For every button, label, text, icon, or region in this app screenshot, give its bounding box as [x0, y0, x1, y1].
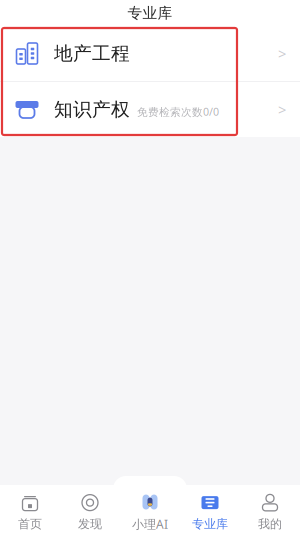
staticText: >	[278, 100, 286, 119]
staticText: 发现	[78, 517, 102, 531]
button[interactable]: 首页	[0, 489, 60, 535]
button[interactable]: 知识产权	[0, 82, 300, 137]
button[interactable]: 发现	[60, 489, 120, 535]
staticText: 知识产权	[54, 98, 130, 121]
button[interactable]: 地产工程	[0, 26, 300, 81]
button[interactable]: 专业库	[180, 489, 240, 535]
staticText: 专业库	[192, 517, 228, 531]
staticText: 小理AI	[132, 516, 168, 532]
staticText: >	[278, 44, 286, 63]
button[interactable]: 我的	[240, 489, 300, 535]
staticText: 免费检索次数0/0	[137, 105, 219, 119]
staticText: 我的	[258, 517, 282, 531]
button[interactable]: 小理AI	[120, 489, 180, 535]
staticText: 专业库	[127, 4, 172, 22]
staticText: 地产工程	[54, 42, 130, 65]
staticText: 首页	[18, 517, 42, 531]
